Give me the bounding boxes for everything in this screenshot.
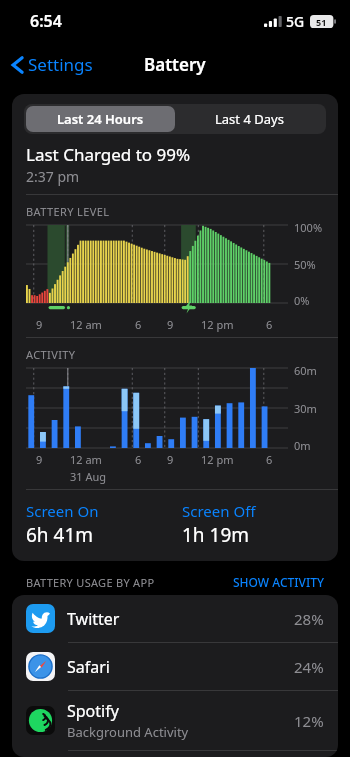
staticText: 0m bbox=[294, 438, 311, 453]
staticText: 6 bbox=[135, 452, 142, 467]
staticText: 6 bbox=[266, 452, 273, 467]
staticText: 50% bbox=[294, 257, 316, 272]
staticText: 9 bbox=[36, 452, 43, 467]
staticText: 6h 41m bbox=[26, 522, 94, 548]
staticText: 9 bbox=[167, 452, 174, 467]
staticText: 24% bbox=[294, 657, 324, 677]
staticText: BATTERY LEVEL bbox=[26, 204, 110, 219]
staticText: Last 24 Hours bbox=[57, 110, 144, 128]
staticText: 12 am bbox=[70, 317, 102, 332]
staticText: 6 bbox=[135, 317, 142, 332]
button[interactable]: Last 24 Hours bbox=[26, 106, 175, 132]
staticText: 12 pm bbox=[201, 452, 234, 467]
staticText: 2:37 pm bbox=[26, 167, 80, 186]
staticText: 12% bbox=[294, 711, 324, 731]
staticText: BATTERY USAGE BY APP bbox=[26, 575, 155, 590]
staticText: 60m bbox=[294, 363, 317, 378]
staticText: Battery bbox=[144, 53, 206, 76]
button[interactable]: Twitter bbox=[12, 595, 338, 642]
staticText: 6 bbox=[266, 317, 273, 332]
staticText: 51 bbox=[316, 16, 327, 28]
staticText: Screen Off bbox=[182, 501, 256, 521]
staticText: 30m bbox=[294, 401, 317, 416]
staticText: Background Activity bbox=[67, 723, 189, 741]
staticText: SHOW ACTIVITY bbox=[233, 574, 324, 590]
button[interactable]: Home & Lock Screen bbox=[12, 751, 338, 757]
button[interactable]: Safari bbox=[12, 643, 338, 690]
staticText: ACTIVITY bbox=[26, 347, 76, 362]
staticText: Safari bbox=[67, 656, 110, 678]
button[interactable]: Settings bbox=[8, 48, 97, 81]
staticText: Last 4 Days bbox=[215, 110, 284, 128]
staticText: Spotify bbox=[67, 700, 119, 722]
staticText: Twitter bbox=[67, 608, 120, 630]
button[interactable]: Spotify bbox=[12, 691, 338, 750]
staticText: 9 bbox=[36, 317, 43, 332]
staticText: 100% bbox=[294, 220, 323, 235]
staticText: Last Charged to 99% bbox=[26, 143, 191, 166]
staticText: 12 pm bbox=[201, 317, 234, 332]
button[interactable]: SHOW ACTIVITY bbox=[233, 574, 324, 590]
staticText: Settings bbox=[28, 53, 93, 76]
staticText: 28% bbox=[294, 609, 324, 629]
staticText: 9 bbox=[167, 317, 174, 332]
staticText: 0% bbox=[294, 293, 310, 308]
staticText: 5G bbox=[286, 12, 305, 31]
staticText: 6:54 bbox=[30, 10, 62, 32]
staticText: 31 Aug bbox=[70, 469, 107, 484]
staticText: Screen On bbox=[26, 501, 99, 521]
button[interactable]: Last 4 Days bbox=[175, 106, 324, 132]
staticText: 1h 19m bbox=[182, 522, 250, 548]
staticText: 12 am bbox=[70, 452, 102, 467]
